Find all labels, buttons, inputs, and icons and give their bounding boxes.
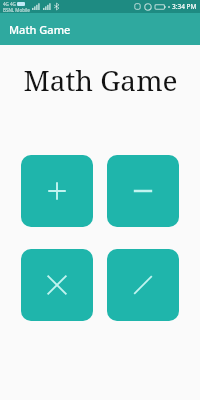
staticText: BSNL Mobile — [3, 7, 30, 13]
button[interactable]: Addition — [21, 155, 93, 227]
staticText: 3:34 PM — [172, 2, 197, 11]
staticText: Math Game — [23, 61, 178, 99]
button[interactable]: Multiplication — [21, 249, 93, 321]
button[interactable]: Subtraction — [107, 155, 179, 227]
staticText: 4G 4G — [3, 1, 16, 7]
button[interactable]: Division — [107, 249, 179, 321]
staticText: Math Game — [9, 22, 71, 37]
